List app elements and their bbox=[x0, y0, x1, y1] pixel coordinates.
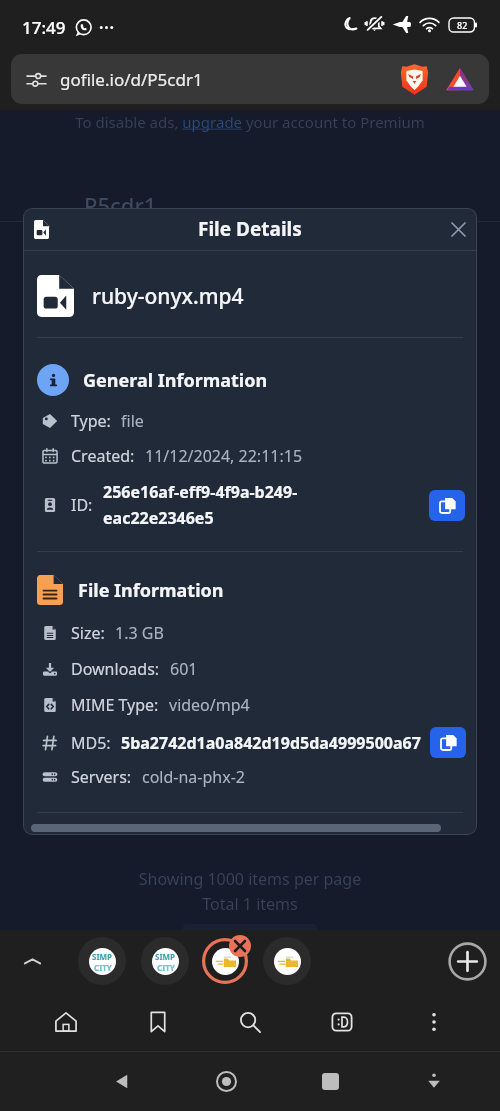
staticText: SIMP bbox=[92, 951, 113, 962]
staticText: Created: bbox=[71, 445, 135, 467]
staticText: 82 bbox=[457, 19, 468, 31]
button[interactable]: Tab bbox=[141, 937, 189, 985]
button[interactable]: Recents bbox=[308, 1059, 352, 1103]
button[interactable]: Back bbox=[100, 1059, 144, 1103]
button[interactable]: Downloads: bbox=[23, 656, 477, 682]
staticText: Type: bbox=[71, 410, 111, 432]
staticText: To disable ads, upgrade your account to … bbox=[0, 112, 500, 132]
button[interactable]: Type: bbox=[23, 408, 477, 434]
button[interactable]: Home bbox=[204, 1059, 248, 1103]
button[interactable]: Close bbox=[445, 216, 471, 242]
staticText: General Information bbox=[83, 368, 268, 393]
button[interactable]: Tab bbox=[201, 937, 249, 985]
staticText: CITY bbox=[94, 962, 112, 973]
button[interactable]: Hide keyboard bbox=[412, 1059, 456, 1103]
button[interactable]: Copy MD5 bbox=[430, 727, 466, 758]
button[interactable]: New tab bbox=[446, 940, 488, 982]
staticText: CITY bbox=[157, 962, 175, 973]
staticText: 601 bbox=[170, 658, 198, 680]
button[interactable]: Tabs bbox=[316, 996, 368, 1048]
staticText: file bbox=[121, 410, 144, 432]
staticText: MD5: bbox=[71, 732, 111, 754]
staticText: 17:49 bbox=[22, 16, 66, 39]
button[interactable]: More options bbox=[408, 996, 460, 1048]
button[interactable]: gofile.io/d/P5cdr1 bbox=[11, 54, 489, 104]
button[interactable]: Copy ID bbox=[429, 490, 465, 521]
staticText: 256e16af-eff9-4f9a-b249- bbox=[103, 481, 298, 503]
staticText: Downloads: bbox=[71, 658, 160, 680]
staticText: eac22e2346e5 bbox=[103, 507, 214, 529]
staticText: video/mp4 bbox=[169, 694, 250, 716]
staticText: cold-na-phx-2 bbox=[142, 766, 245, 788]
staticText: 5ba2742d1a0a842d19d5da4999500a67 bbox=[121, 732, 421, 754]
button[interactable]: Home bbox=[40, 996, 92, 1048]
staticText: Total 1 items bbox=[0, 893, 500, 915]
staticText: ID: bbox=[71, 494, 93, 516]
button[interactable]: Collapse tabs bbox=[14, 943, 50, 979]
staticText: 1.3 GB bbox=[115, 622, 164, 644]
staticText: ruby-onyx.mp4 bbox=[92, 282, 244, 311]
button[interactable]: ID: bbox=[23, 479, 477, 531]
staticText: 11/12/2024, 22:11:15 bbox=[145, 445, 303, 467]
button[interactable]: Tab bbox=[78, 937, 126, 985]
button[interactable]: Search bbox=[224, 996, 276, 1048]
button[interactable]: Bookmarks bbox=[132, 996, 184, 1048]
staticText: MIME Type: bbox=[71, 694, 159, 716]
button[interactable]: Created: bbox=[23, 443, 477, 469]
button[interactable]: MD5: bbox=[23, 727, 466, 758]
button[interactable]: Size: bbox=[23, 620, 477, 646]
staticText: File Details bbox=[198, 216, 302, 242]
staticText: gofile.io/d/P5cdr1 bbox=[60, 68, 203, 91]
staticText: P5cdr1 bbox=[84, 190, 157, 220]
staticText: Servers: bbox=[71, 766, 132, 788]
button[interactable]: Close tab bbox=[229, 935, 251, 957]
staticText: Size: bbox=[71, 622, 105, 644]
button[interactable]: Tab bbox=[263, 937, 311, 985]
staticText: SIMP bbox=[155, 951, 176, 962]
staticText: File Information bbox=[78, 578, 224, 603]
staticText: Showing 1000 items per page bbox=[0, 868, 500, 890]
button[interactable]: Servers: bbox=[23, 764, 477, 790]
button[interactable]: MIME Type: bbox=[23, 692, 477, 718]
